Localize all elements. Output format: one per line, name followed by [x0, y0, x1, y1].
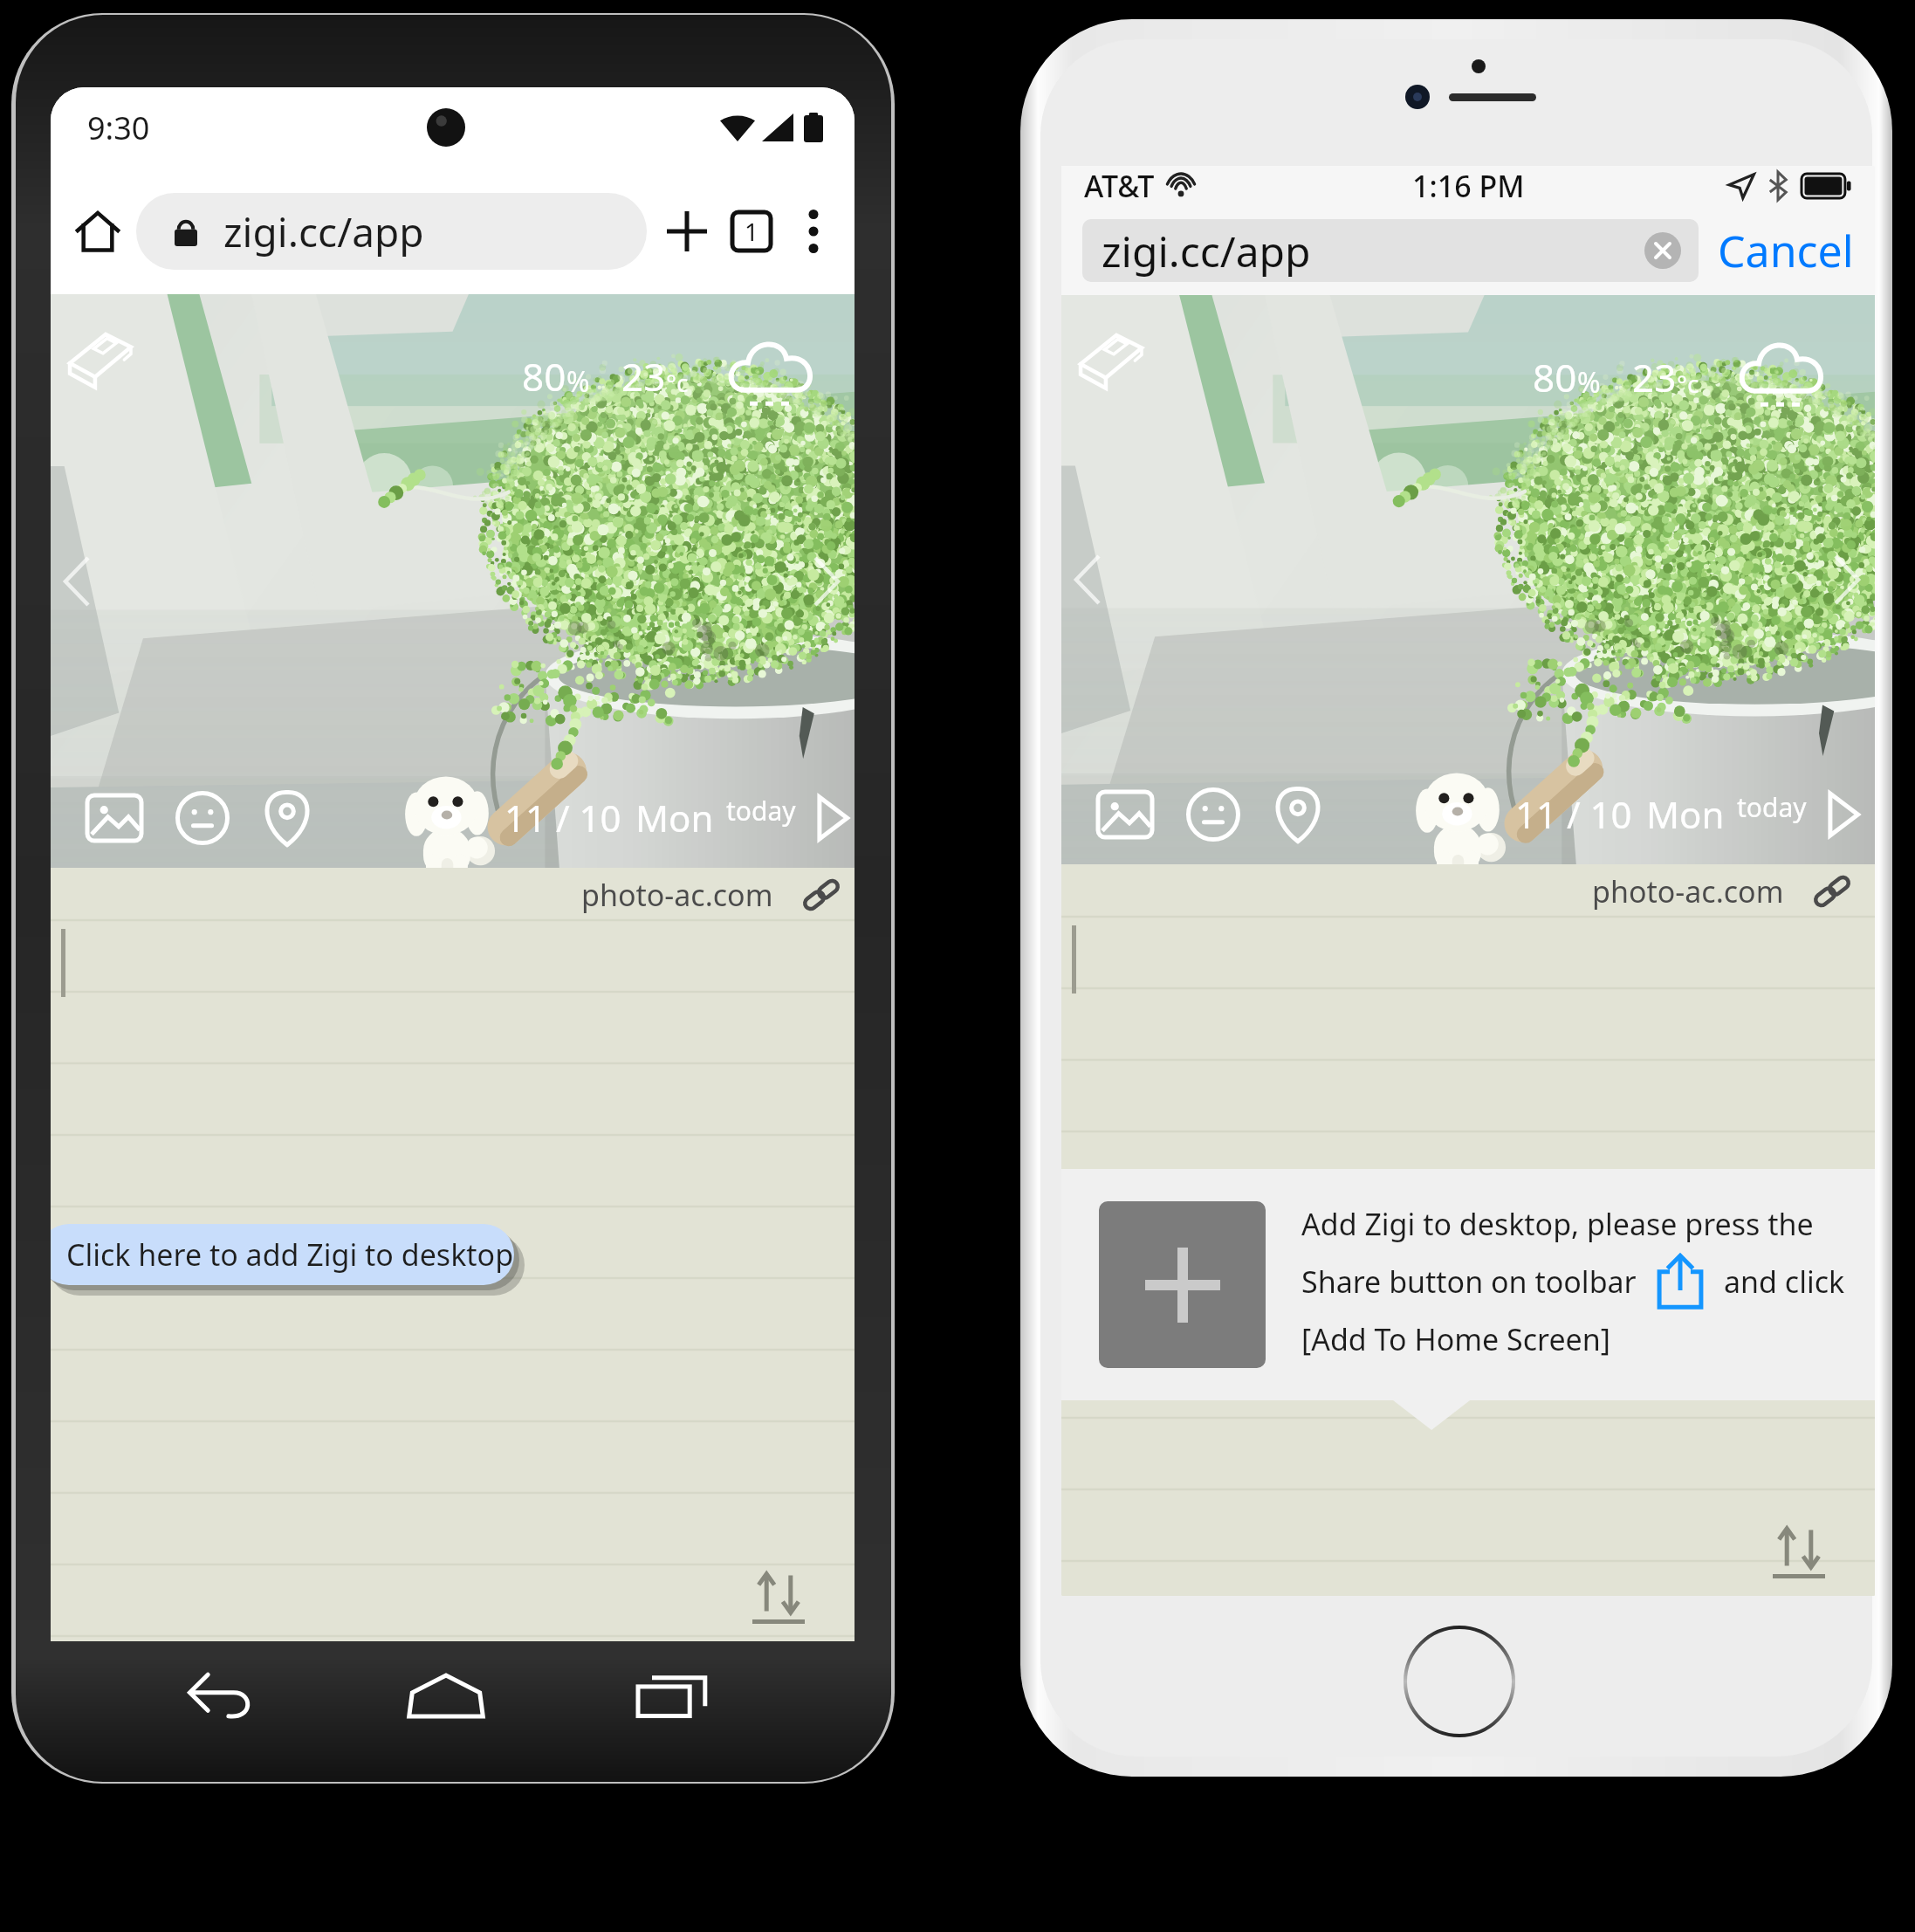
staticText: Mon — [1646, 789, 1725, 839]
button[interactable]: Next photo — [1824, 543, 1870, 616]
button[interactable]: Sort — [748, 1568, 809, 1629]
staticText: % — [566, 362, 590, 401]
staticText: AT&T — [1084, 166, 1155, 206]
button[interactable]: Photo — [79, 783, 149, 853]
button[interactable]: Add — [1099, 1201, 1266, 1368]
button[interactable]: Home — [63, 196, 133, 266]
staticText: 1:16 PM — [1412, 166, 1525, 206]
button[interactable]: New tab — [655, 200, 718, 263]
button[interactable]: zigi.cc/app — [136, 193, 647, 270]
staticText: % — [1577, 363, 1601, 402]
button[interactable]: Cancel — [1713, 212, 1859, 289]
button[interactable]: Next — [1824, 788, 1863, 841]
staticText: 11 / 10 — [1515, 789, 1632, 839]
staticText: photo-ac.com — [1592, 871, 1784, 911]
button[interactable]: Previous photo — [1065, 543, 1110, 616]
staticText: 80 — [522, 350, 566, 402]
staticText: °c — [1677, 367, 1699, 400]
button[interactable]: Back — [182, 1656, 260, 1735]
staticText: today — [1737, 789, 1807, 825]
staticText: Click here to add Zigi to desktop — [66, 1234, 514, 1275]
staticText: today — [726, 793, 796, 828]
button[interactable]: Mood — [168, 783, 237, 853]
staticText: 23 — [621, 350, 666, 402]
button[interactable]: Home — [407, 1656, 485, 1735]
staticText: zigi.cc/app — [223, 204, 424, 259]
button[interactable]: Clear — [1644, 232, 1681, 269]
staticText: Mon — [635, 793, 714, 842]
button[interactable]: Click here to add Zigi to desktop — [51, 1224, 514, 1285]
button[interactable]: Next — [813, 792, 852, 844]
button[interactable]: zigi.cc/app — [1082, 219, 1699, 282]
staticText: 9:30 — [87, 107, 150, 149]
staticText: [Add To Home Screen] — [1301, 1319, 1610, 1359]
button[interactable]: Location — [1263, 780, 1333, 849]
staticText: Add Zigi to desktop, please press the — [1301, 1204, 1814, 1244]
button[interactable]: Next photo — [804, 545, 849, 618]
staticText: 23 — [1632, 351, 1677, 403]
staticText: Cancel — [1718, 221, 1854, 280]
button[interactable]: Recents — [634, 1656, 712, 1735]
staticText: and click — [1724, 1262, 1845, 1302]
staticText: photo-ac.com — [581, 875, 773, 915]
button[interactable]: Notes — [63, 322, 138, 397]
staticText: Share button on toolbar — [1301, 1262, 1637, 1302]
button[interactable]: More options — [785, 203, 842, 260]
button[interactable]: Mood — [1178, 780, 1248, 849]
button[interactable]: Notes — [1074, 323, 1149, 398]
staticText: zigi.cc/app — [1102, 223, 1311, 279]
button[interactable]: Photo — [1090, 780, 1160, 849]
button[interactable]: photo-ac.com — [574, 870, 848, 920]
button[interactable]: Previous photo — [54, 545, 100, 618]
staticText: °c — [666, 366, 689, 399]
staticText: 80 — [1533, 351, 1577, 403]
button[interactable]: Tabs — [720, 200, 783, 263]
staticText: 1 — [745, 215, 759, 248]
staticText: 11 / 10 — [504, 793, 621, 842]
button[interactable]: Sort — [1768, 1523, 1829, 1584]
button[interactable]: Location — [252, 783, 322, 853]
button[interactable]: photo-ac.com — [1585, 866, 1859, 917]
